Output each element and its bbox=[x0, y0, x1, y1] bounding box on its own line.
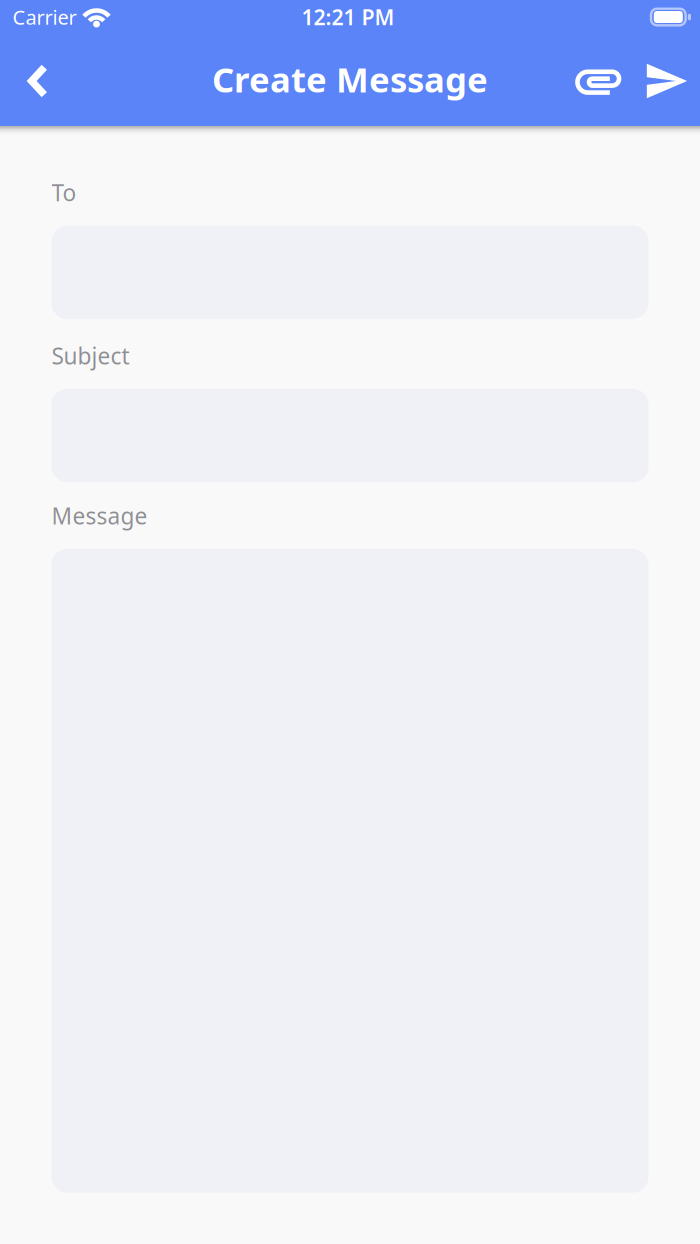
staticText: Create Message bbox=[212, 56, 488, 102]
button[interactable]: Send bbox=[643, 58, 689, 104]
staticText: 12:21 PM bbox=[301, 3, 394, 31]
button[interactable]: Attach file bbox=[570, 53, 626, 109]
staticText: Message bbox=[51, 501, 147, 531]
staticText: Carrier bbox=[12, 4, 76, 30]
button[interactable]: Back bbox=[24, 61, 50, 101]
staticText: To bbox=[51, 177, 76, 208]
staticText: Subject bbox=[51, 341, 129, 371]
